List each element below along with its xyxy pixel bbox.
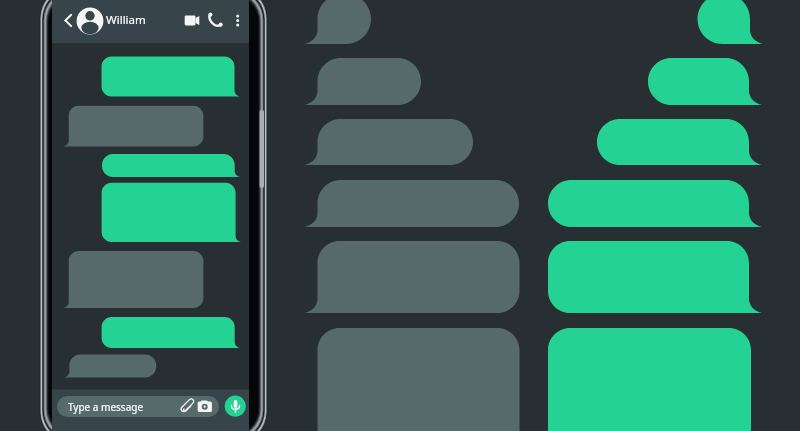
button[interactable]: More options: [232, 10, 244, 31]
button[interactable]: Camera: [196, 399, 213, 414]
button[interactable]: Back: [60, 10, 76, 31]
button[interactable]: Attach file: [180, 398, 195, 414]
button[interactable]: Contact profile: [76, 7, 104, 35]
button[interactable]: Type a message: [57, 396, 177, 417]
button[interactable]: William: [106, 9, 164, 31]
staticText: Type a message: [68, 400, 144, 414]
button[interactable]: Video call: [182, 11, 202, 30]
staticText: William: [106, 12, 146, 28]
button[interactable]: Voice call: [206, 11, 225, 30]
button[interactable]: Record voice message: [225, 396, 246, 417]
